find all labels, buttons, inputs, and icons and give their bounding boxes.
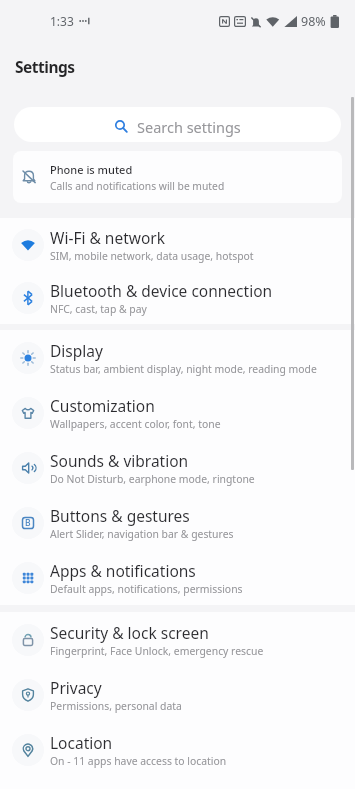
staticText: Calls and notifications will be muted (50, 179, 225, 193)
staticText: 98% (301, 13, 326, 30)
staticText: Default apps, notifications, permissions (50, 582, 243, 596)
staticText: Wallpapers, accent color, font, tone (50, 417, 221, 431)
button[interactable]: Customization (0, 385, 355, 440)
staticText: Buttons & gestures (50, 505, 190, 526)
staticText: Apps & notifications (50, 560, 196, 581)
staticText: Fingerprint, Face Unlock, emergency resc… (50, 644, 264, 658)
staticText: Alert Slider, navigation bar & gestures (50, 527, 234, 541)
button[interactable]: Wi-Fi & network (0, 218, 355, 271)
staticText: SIM, mobile network, data usage, hotspot (50, 249, 254, 263)
staticText: Location (50, 732, 113, 753)
staticText: Settings (15, 56, 75, 77)
button[interactable]: Phone is muted (13, 151, 342, 203)
button[interactable]: Location (0, 722, 355, 777)
button[interactable]: Privacy (0, 667, 355, 722)
staticText: 1:33 (50, 13, 74, 29)
button[interactable]: Sounds & vibration (0, 440, 355, 495)
button[interactable]: B (0, 495, 355, 550)
staticText: Security & lock screen (50, 622, 209, 643)
button[interactable]: Apps & notifications (0, 550, 355, 605)
staticText: Status bar, ambient display, night mode,… (50, 362, 317, 376)
staticText: On - 11 apps have access to location (50, 754, 227, 768)
staticText: Privacy (50, 677, 102, 698)
staticText: Do Not Disturb, earphone mode, ringtone (50, 472, 255, 486)
staticText: Display (50, 340, 103, 361)
staticText: Bluetooth & device connection (50, 280, 273, 301)
button[interactable]: Search settings (14, 107, 341, 142)
staticText: NFC, cast, tap & pay (50, 302, 147, 316)
staticText: Phone is muted (50, 162, 133, 177)
button[interactable]: Bluetooth & device connection (0, 271, 355, 324)
staticText: Customization (50, 395, 155, 416)
staticText: Permissions, personal data (50, 699, 182, 713)
staticText: B (25, 517, 31, 529)
button[interactable]: Display (0, 330, 355, 385)
staticText: Sounds & vibration (50, 450, 189, 471)
button[interactable]: Security & lock screen (0, 612, 355, 667)
staticText: Wi-Fi & network (50, 227, 166, 248)
staticText: Search settings (137, 117, 241, 137)
